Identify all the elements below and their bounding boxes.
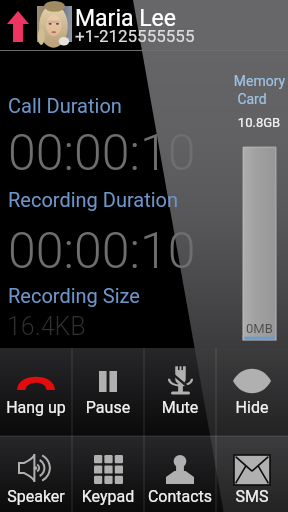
staticText: Keypad — [72, 487, 144, 506]
staticText: Mute — [144, 398, 216, 417]
button[interactable]: SMS — [216, 436, 288, 512]
staticText: Recording Duration — [8, 188, 179, 211]
button[interactable]: Hide — [216, 348, 288, 436]
staticText: Memory — [229, 73, 288, 89]
staticText: Call Duration — [8, 94, 122, 117]
staticText: 00:00:10 — [8, 124, 196, 183]
button[interactable]: Keypad — [72, 436, 144, 512]
button[interactable]: Speaker — [0, 436, 72, 512]
staticText: Speaker — [0, 487, 72, 506]
staticText: Contacts — [144, 487, 216, 506]
staticText: 00:00:10 — [8, 222, 196, 281]
staticText: Hang up — [0, 398, 72, 417]
staticText: 0MB — [246, 321, 273, 336]
staticText: Hide — [216, 398, 288, 417]
staticText: SMS — [216, 487, 288, 506]
staticText: Recording Size — [8, 284, 140, 307]
staticText: Pause — [72, 398, 144, 417]
button[interactable]: Outgoing call — [2, 6, 34, 46]
staticText: +1-2125555555 — [75, 26, 195, 46]
staticText: 10.8GB — [229, 115, 288, 130]
staticText: Maria Lee — [75, 5, 176, 32]
staticText: Card — [222, 91, 282, 107]
staticText: 16.4KB — [7, 312, 86, 341]
button[interactable]: Hang up — [0, 348, 72, 436]
button[interactable]: Mute — [144, 348, 216, 436]
button[interactable]: Contact photo — [37, 6, 72, 42]
button[interactable]: Pause — [72, 348, 144, 436]
button[interactable]: Contacts — [144, 436, 216, 512]
